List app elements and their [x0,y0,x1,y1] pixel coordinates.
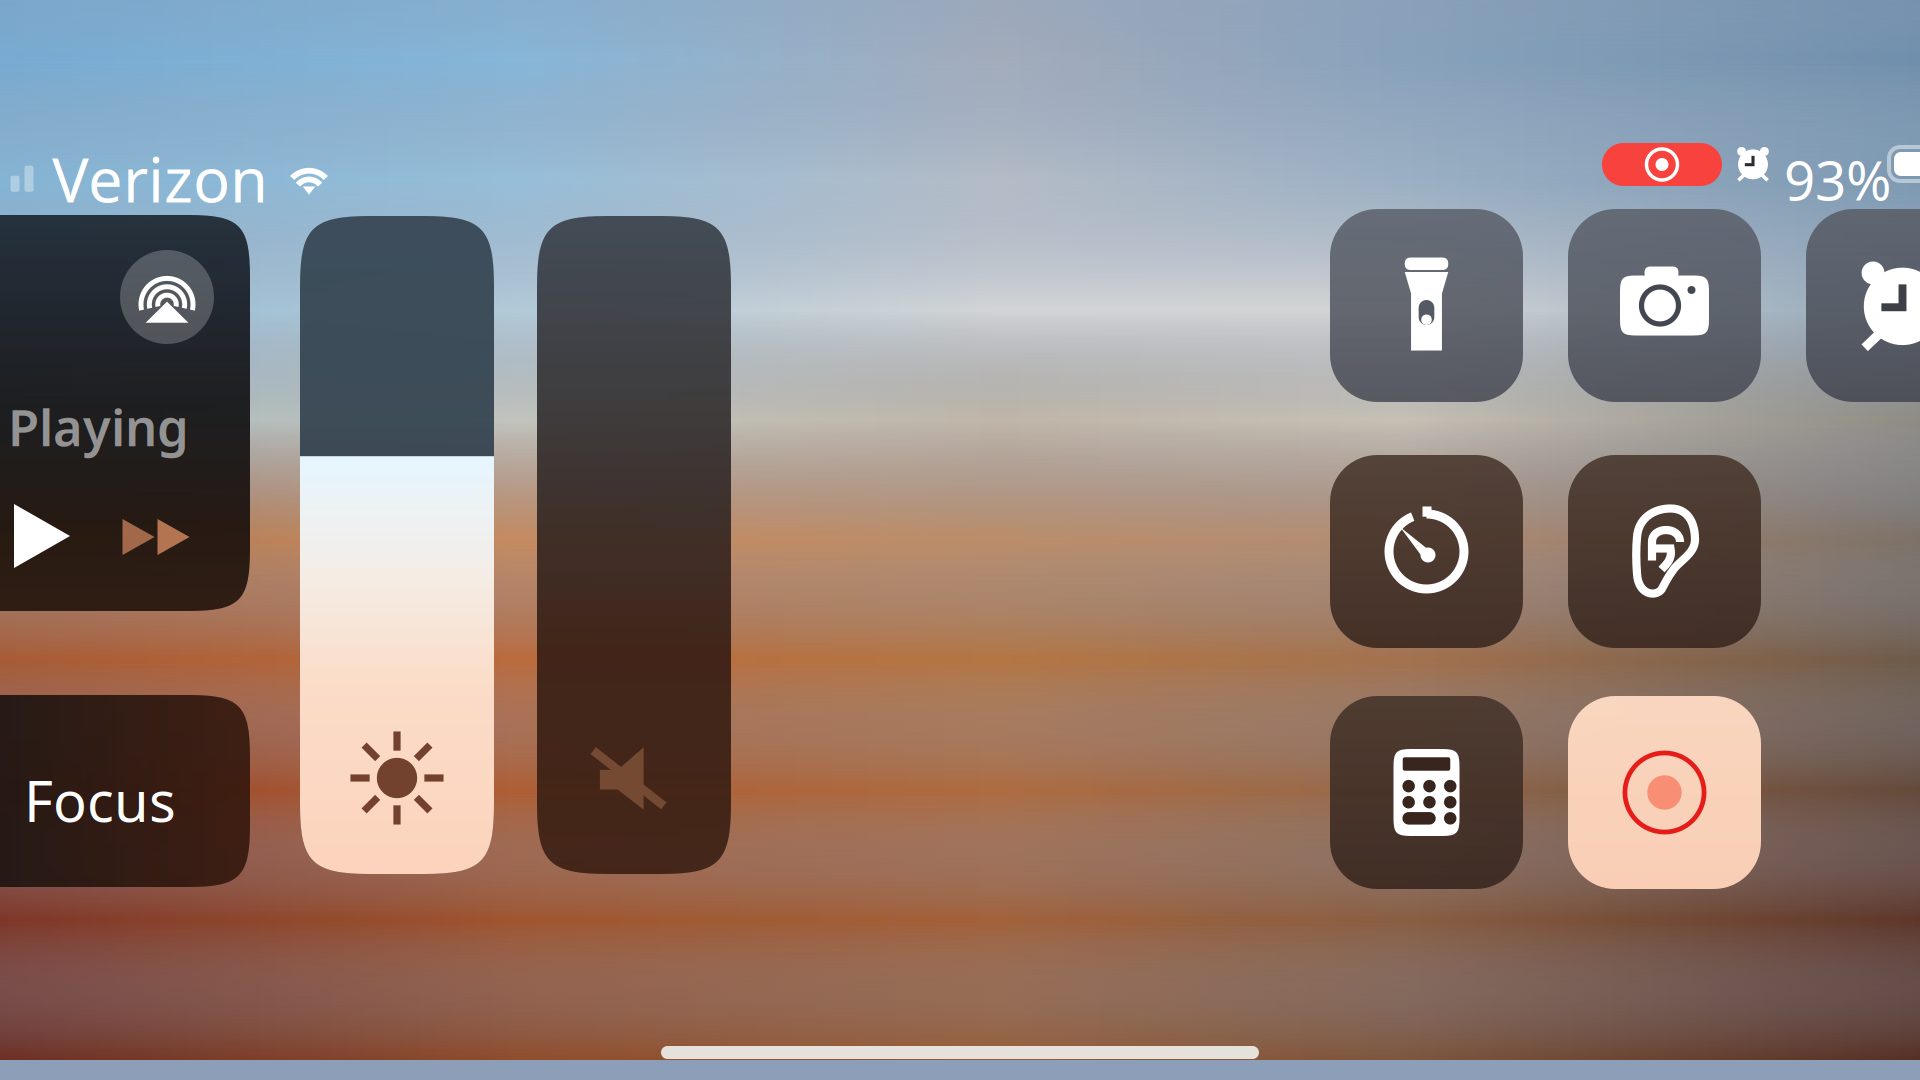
button[interactable]: Hearing [1568,455,1761,648]
staticText: 93% [1784,143,1891,216]
button[interactable]: Alarm [1806,209,1920,402]
button[interactable]: AirPlay [120,250,214,344]
button[interactable]: Calculator [1330,696,1523,889]
staticText: Playing [8,393,189,460]
button[interactable]: Next track [121,517,191,557]
button[interactable]: Screen Recording [1568,696,1761,889]
button[interactable]: Brightness [300,216,494,874]
button[interactable]: Focus [0,695,250,887]
staticText: Focus [24,763,176,837]
button[interactable]: Volume [537,216,731,874]
button[interactable]: Camera [1568,209,1761,402]
button[interactable]: Play [10,504,74,568]
button[interactable]: Flashlight [1330,209,1523,402]
staticText: Verizon [52,138,268,219]
button[interactable]: Timer [1330,455,1523,648]
